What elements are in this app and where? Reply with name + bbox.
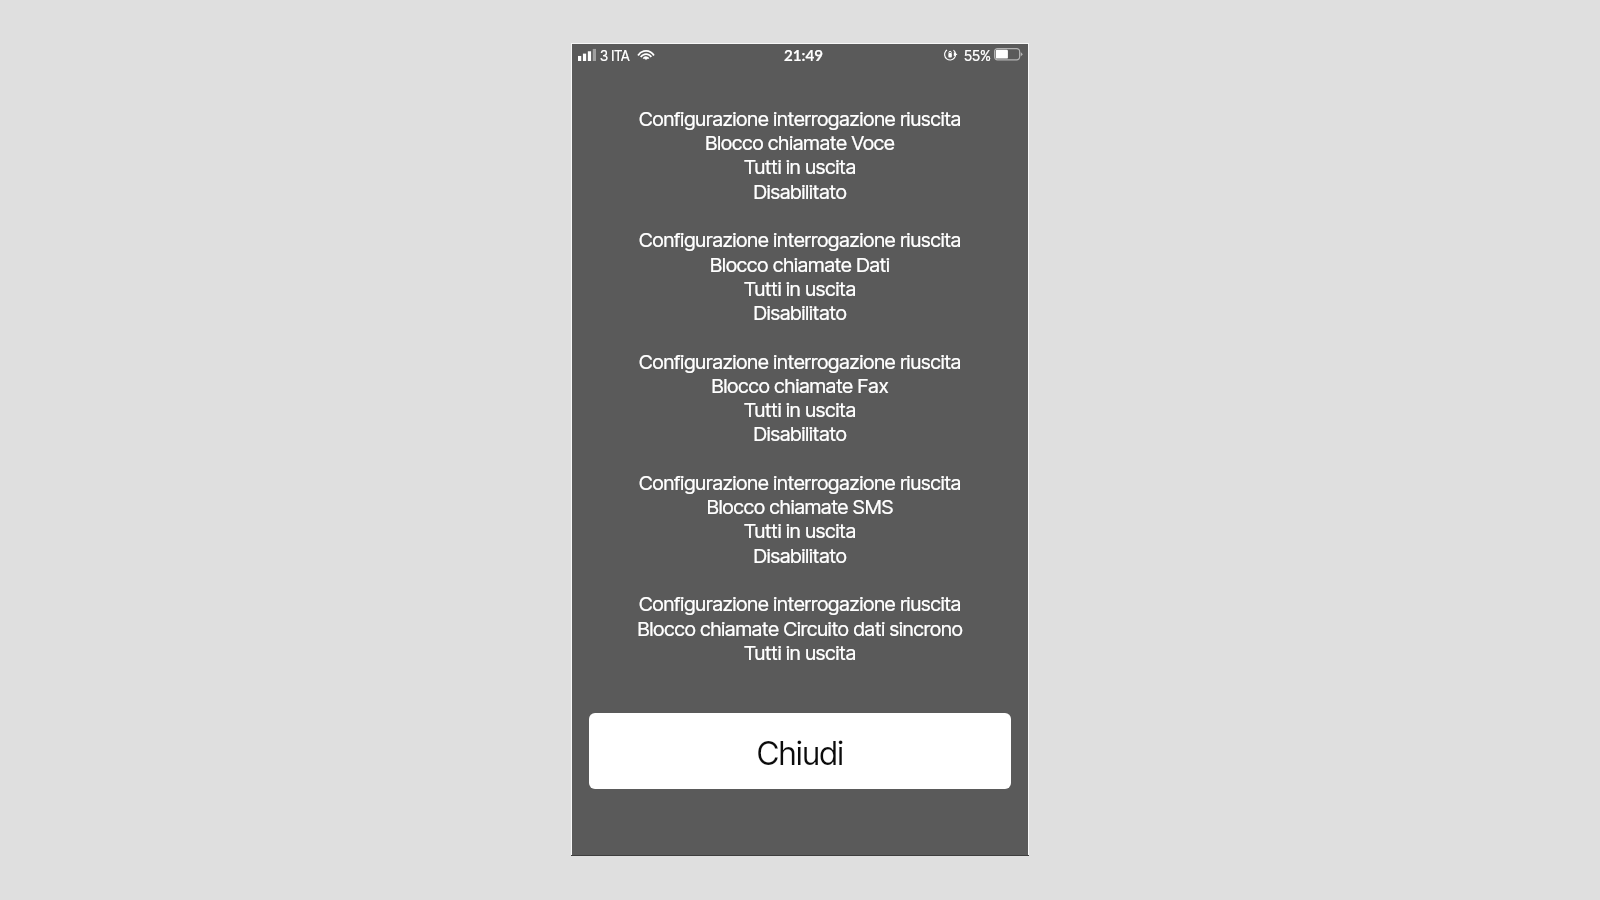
other: Rotation lock	[944, 48, 957, 61]
staticText: 3 ITA	[600, 48, 630, 64]
staticText: Blocco chiamate Voce	[572, 131, 1028, 155]
staticText: 21:49	[784, 46, 824, 64]
staticText: Disabilitato	[572, 544, 1028, 568]
staticText: Blocco chiamate SMS	[572, 495, 1028, 519]
staticText: Configurazione interrogazione riuscita	[572, 228, 1028, 252]
other: Battery 55 percent	[994, 48, 1024, 61]
other: Wi-Fi	[637, 48, 655, 60]
staticText: Blocco chiamate Circuito dati sincrono	[572, 617, 1028, 641]
staticText: Tutti in uscita	[572, 277, 1028, 301]
staticText: Tutti in uscita	[572, 519, 1028, 543]
staticText: Tutti in uscita	[572, 398, 1028, 422]
staticText: Chiudi	[757, 734, 844, 773]
staticText: Configurazione interrogazione riuscita	[572, 107, 1028, 131]
other: Cellular signal	[578, 49, 596, 61]
staticText: Configurazione interrogazione riuscita	[572, 592, 1028, 616]
staticText: Configurazione interrogazione riuscita	[572, 471, 1028, 495]
staticText: Disabilitato	[572, 180, 1028, 204]
staticText: Tutti in uscita	[572, 641, 1028, 665]
staticText: 55%	[964, 47, 991, 64]
staticText: Disabilitato	[572, 422, 1028, 446]
staticText: Disabilitato	[572, 301, 1028, 325]
staticText: Blocco chiamate Fax	[572, 374, 1028, 398]
staticText: Blocco chiamate Dati	[572, 253, 1028, 277]
button[interactable]: Chiudi	[589, 713, 1011, 789]
staticText: Configurazione interrogazione riuscita	[572, 350, 1028, 374]
staticText: Tutti in uscita	[572, 155, 1028, 179]
